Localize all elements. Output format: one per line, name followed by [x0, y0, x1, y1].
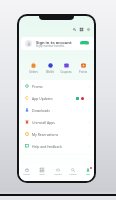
staticText: Wallet: [46, 70, 54, 74]
button[interactable]: Sign in: [80, 41, 89, 45]
button[interactable]: App Updates: [25, 92, 91, 104]
staticText: Me: [86, 173, 90, 176]
button[interactable]: Wallet: [42, 60, 58, 74]
button[interactable]: Me: [80, 164, 94, 181]
staticText: App Updates: [32, 96, 53, 101]
button[interactable]: Sign in to account: [21, 37, 94, 50]
staticText: Promo: [32, 84, 43, 89]
staticText: Uninstall Apps: [32, 120, 55, 125]
button[interactable]: Downloads: [25, 104, 91, 116]
staticText: Help and feedback: [32, 144, 62, 149]
button[interactable]: Help and feedback: [25, 140, 91, 152]
button[interactable]: Coupons: [58, 60, 74, 74]
button[interactable]: Promo: [25, 80, 91, 92]
staticText: Home: [23, 173, 30, 176]
staticText: Downloads: [32, 108, 50, 113]
staticText: Sign in to account: [36, 40, 72, 45]
staticText: Games: [54, 173, 62, 176]
button[interactable]: Games: [50, 164, 65, 181]
staticText: Enjoy member benefits: [36, 44, 65, 48]
staticText: Coupons: [60, 70, 72, 74]
button[interactable]: Scan QR code: [77, 25, 86, 34]
button[interactable]: Home: [19, 164, 34, 181]
button[interactable]: Settings: [84, 25, 93, 34]
button[interactable]: Search: [65, 164, 80, 181]
button[interactable]: My Reservations: [25, 128, 91, 140]
staticText: Apps: [39, 173, 45, 176]
staticText: Orders: [29, 70, 38, 74]
button[interactable]: Orders: [25, 60, 41, 74]
button[interactable]: Search: [70, 25, 79, 34]
button[interactable]: Uninstall Apps: [25, 116, 91, 128]
staticText: Search: [69, 173, 77, 176]
staticText: My Reservations: [32, 132, 59, 137]
button[interactable]: Points: [75, 60, 91, 74]
staticText: Points: [79, 70, 87, 74]
staticText: Sign in: [81, 42, 89, 45]
button[interactable]: Apps: [34, 164, 49, 181]
